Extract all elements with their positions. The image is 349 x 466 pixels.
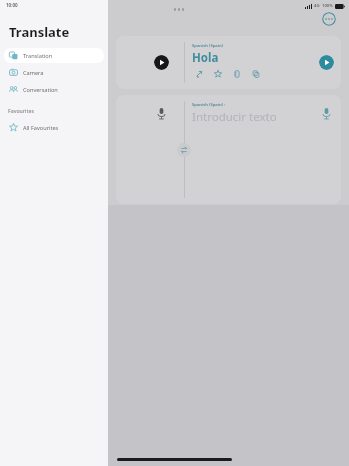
button[interactable]: Add to favourites	[213, 69, 223, 79]
staticText: Introducir texto	[192, 109, 277, 125]
button[interactable]: Dictate translation	[320, 107, 333, 120]
button[interactable]: Translation	[4, 48, 104, 63]
button[interactable]: Speak	[116, 95, 341, 204]
button[interactable]: Dictionary	[232, 69, 242, 79]
button[interactable]: Speak	[155, 107, 168, 120]
button[interactable]: All Favourites	[4, 120, 104, 135]
staticText: Conversation	[23, 86, 58, 94]
staticText: Translation	[23, 52, 53, 60]
button[interactable]: Full screen	[194, 69, 204, 79]
staticText: Camera	[23, 69, 44, 77]
staticText: 4G	[314, 3, 320, 9]
button[interactable]: More options	[322, 12, 336, 26]
staticText: Spanish (Spain) :	[192, 102, 226, 108]
button[interactable]: Play original	[154, 55, 169, 70]
button[interactable]: Multitasking controls	[170, 4, 188, 15]
button[interactable]: Swap languages	[177, 143, 191, 157]
staticText: Hola	[192, 50, 219, 66]
button[interactable]: Play original	[116, 36, 341, 89]
button[interactable]: Copy	[251, 69, 261, 79]
staticText: Favourites	[8, 107, 34, 114]
staticText: All Favourites	[23, 124, 59, 132]
staticText: Translate	[9, 23, 70, 41]
staticText: Spanish (Spain)	[192, 43, 224, 49]
button[interactable]: Play translation	[319, 55, 334, 70]
button[interactable]: Camera	[4, 65, 104, 80]
button[interactable]: Conversation	[4, 82, 104, 97]
staticText: 10:00	[6, 2, 18, 8]
staticText: 100%	[322, 3, 333, 9]
